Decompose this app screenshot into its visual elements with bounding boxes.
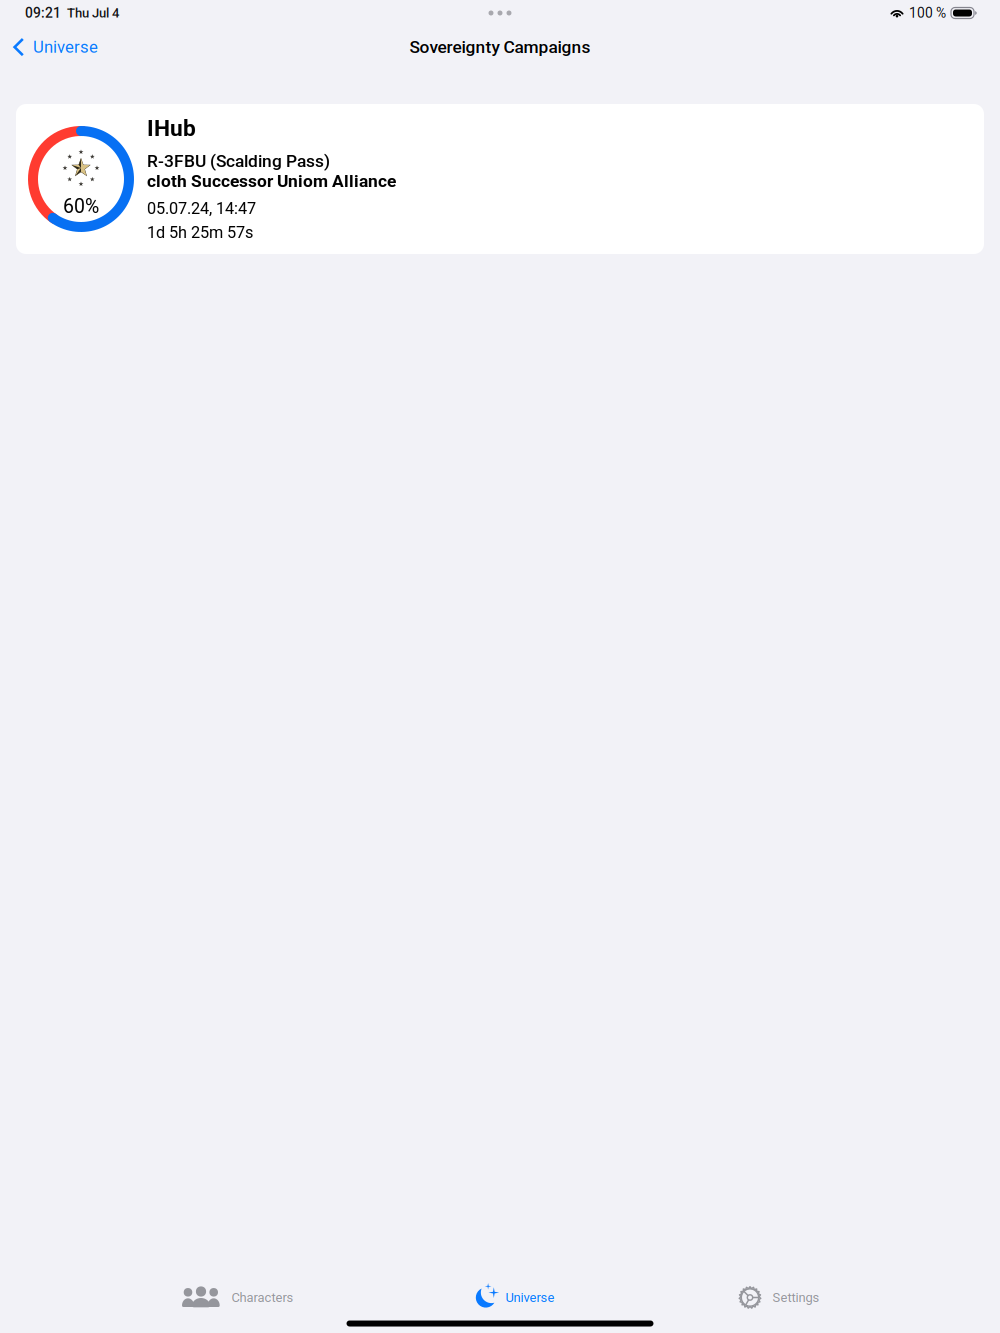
staticText: Thu Jul 4 xyxy=(67,5,119,21)
staticText: 100 % xyxy=(909,5,946,21)
button[interactable]: Characters xyxy=(180,1280,293,1314)
staticText: Characters xyxy=(231,1290,293,1305)
staticText: IHub xyxy=(147,115,196,142)
staticText: R-3FBU (Scalding Pass) xyxy=(147,151,330,171)
button[interactable]: 60% xyxy=(16,104,984,254)
staticText: 1d 5h 25m 57s xyxy=(147,223,253,242)
staticText: Universe xyxy=(505,1290,554,1305)
button[interactable]: Settings xyxy=(738,1280,819,1314)
staticText: 60% xyxy=(63,195,99,218)
staticText: Universe xyxy=(33,37,98,57)
staticText: cloth Successor Uniom Alliance xyxy=(147,171,396,191)
staticText: Settings xyxy=(772,1290,819,1305)
button[interactable]: Universe xyxy=(0,30,108,64)
staticText: 09:21 xyxy=(25,5,61,21)
button[interactable]: Universe xyxy=(475,1280,554,1314)
staticText: 05.07.24, 14:47 xyxy=(147,199,256,218)
staticText: Sovereignty Campaigns xyxy=(409,37,590,57)
